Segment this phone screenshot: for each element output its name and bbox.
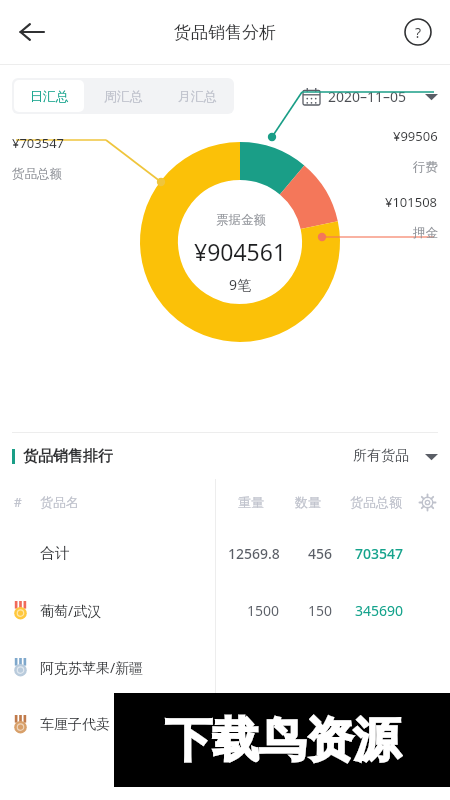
staticText: 货品总额 [350,494,402,510]
staticText: 1500 [247,601,280,620]
staticText: 345690 [354,601,403,620]
staticText: 数量 [295,494,321,510]
button[interactable]: Back [8,8,56,56]
button[interactable]: Settings [412,487,442,517]
staticText: ¥904561 [194,236,287,267]
staticText: ? [415,23,422,42]
staticText: 葡萄/武汉 [40,601,102,620]
staticText: 阿克苏苹果/新疆 [40,658,144,677]
staticText: 合计 [40,544,70,563]
staticText: 12569.8 [228,544,280,563]
staticText: 月汇总 [178,88,217,104]
staticText: 车厘子代卖 [40,716,110,734]
button[interactable]: 车厘子代卖 [0,696,450,753]
button[interactable]: 2020–11–05 [303,87,438,106]
button[interactable]: 所有货品 [353,447,438,465]
staticText: 456 [308,544,333,563]
staticText: 日汇总 [30,88,69,104]
button[interactable]: 周汇总 [88,80,158,112]
staticText: 2020–11–05 [328,87,407,106]
staticText: 票据金额 [216,212,266,228]
staticText: ¥703547 [12,134,65,152]
staticText: 货品销售排行 [23,447,113,466]
staticText: 所有货品 [353,447,409,465]
staticText: 货品名 [40,494,79,510]
button[interactable]: 阿克苏苹果/新疆 [0,639,450,696]
staticText: 下载鸟资源 [165,711,400,770]
staticText: # [14,494,22,510]
button[interactable]: Help [396,10,440,54]
staticText: ¥99506 [393,127,438,145]
staticText: 周汇总 [104,88,143,104]
staticText: 押金 [413,225,438,241]
staticText: 货品销售分析 [174,22,276,43]
staticText: ¥101508 [385,193,438,211]
staticText: 行费 [413,159,438,175]
button[interactable]: 月汇总 [162,80,232,112]
staticText: 重量 [238,494,264,510]
button[interactable]: 合计 [0,525,450,582]
button[interactable]: 日汇总 [14,80,84,112]
staticText: 150 [308,601,333,620]
button[interactable]: 葡萄/武汉 [0,582,450,639]
staticText: 9笔 [229,275,252,294]
staticText: 703547 [354,544,403,563]
staticText: 货品总额 [12,166,62,182]
